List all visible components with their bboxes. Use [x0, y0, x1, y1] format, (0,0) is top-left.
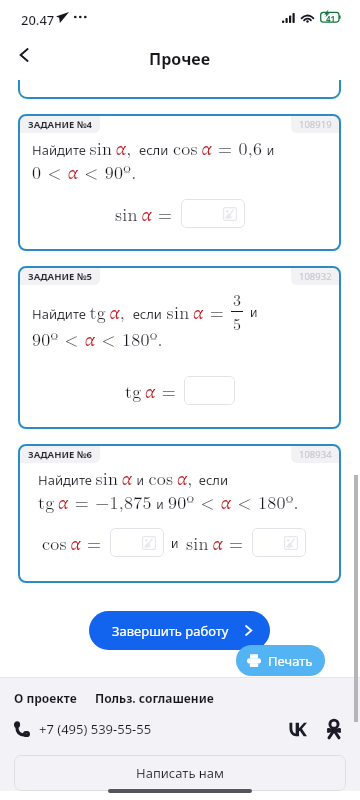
staticText: tg α = −1,875 и 90º < α < 180º. [38, 489, 299, 515]
staticText: ЗАДАНИЕ №6 [28, 448, 92, 461]
staticText: 108932 [299, 270, 332, 283]
button[interactable]: Написать нам [14, 755, 346, 791]
staticText: 90º < α < 180º. [32, 326, 163, 352]
staticText: ЗАДАНИЕ №4 [28, 118, 92, 131]
staticText: Завершить работу [112, 622, 229, 640]
staticText: 3 [233, 288, 242, 311]
staticText: tg α = [125, 378, 176, 404]
staticText: sin α = [186, 530, 244, 556]
staticText: sin α = [115, 201, 173, 227]
button[interactable]: Answer field [110, 528, 164, 557]
staticText: Прочее [149, 48, 211, 70]
button[interactable]: Answer field [184, 376, 235, 405]
button[interactable]: Польз. соглашение [95, 690, 214, 706]
staticText: 108934 [299, 448, 332, 461]
staticText: 0 < α < 90º. [32, 159, 137, 185]
button[interactable]: Печать [236, 645, 325, 676]
staticText: Найдите sin α, если cos α = 0,6 и [32, 135, 275, 161]
staticText: 108919 [299, 118, 332, 131]
staticText: 41 [326, 13, 336, 24]
staticText: Найдите sin α и cos α, если [38, 465, 229, 491]
staticText: 20.47 [21, 11, 55, 29]
staticText: ЗАДАНИЕ №5 [28, 270, 92, 283]
button[interactable]: +7 (495) 539-55-55 [39, 720, 152, 738]
staticText: 5 [233, 312, 242, 335]
staticText: Найдите tg α, если sin α = [32, 299, 231, 325]
button[interactable]: Back [6, 37, 42, 73]
button[interactable]: Odnoklassniki [322, 717, 346, 741]
staticText: Печать [268, 652, 313, 670]
staticText: cos α = [42, 530, 102, 556]
button[interactable]: Завершить работу [89, 611, 270, 650]
button[interactable]: VKontakte [284, 717, 308, 741]
button[interactable]: О проекте [14, 690, 77, 706]
button[interactable]: Answer field [181, 199, 245, 228]
staticText: и [250, 304, 258, 320]
staticText: и [171, 535, 179, 551]
staticText: Написать нам [136, 764, 225, 782]
button[interactable]: Answer field [252, 528, 306, 557]
